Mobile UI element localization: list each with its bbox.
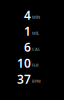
staticText: 10 bbox=[17, 55, 31, 71]
button[interactable]: 6 calories bbox=[18, 39, 60, 55]
button[interactable]: 37 beats per minute bbox=[18, 71, 60, 87]
staticText: 6 bbox=[24, 39, 31, 55]
staticText: CAL bbox=[32, 46, 40, 52]
button[interactable]: 4 minutes bbox=[18, 7, 60, 23]
staticText: BPM bbox=[32, 78, 41, 84]
staticText: MIL bbox=[32, 30, 39, 36]
staticText: FLR bbox=[32, 62, 39, 68]
button[interactable]: 1 mile bbox=[18, 23, 60, 39]
staticText: 4 bbox=[24, 7, 31, 23]
staticText: MIN bbox=[32, 14, 40, 20]
staticText: 1 bbox=[24, 23, 31, 39]
button[interactable]: 10 floors bbox=[18, 55, 60, 71]
staticText: 37 bbox=[17, 71, 31, 87]
